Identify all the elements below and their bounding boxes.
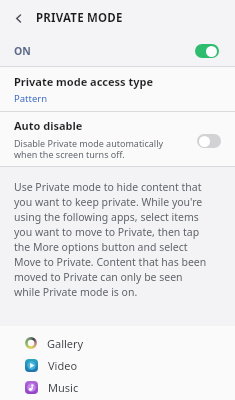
- button[interactable]: Gallery: [0, 332, 235, 354]
- staticText: while Private mode is on.: [14, 285, 138, 299]
- button[interactable]: PRIVATE MODE: [0, 0, 235, 36]
- staticText: the More options button and select: [14, 240, 188, 254]
- button[interactable]: [197, 134, 221, 148]
- staticText: Music: [48, 380, 79, 395]
- staticText: Private mode access type: [14, 74, 154, 89]
- staticText: ON: [14, 44, 31, 58]
- staticText: Auto disable: [14, 118, 83, 133]
- button[interactable]: [195, 44, 219, 58]
- button[interactable]: ON: [0, 36, 235, 66]
- staticText: Video: [48, 358, 78, 373]
- staticText: you want to keep private. While you're: [14, 195, 203, 209]
- button[interactable]: Video: [0, 354, 235, 376]
- staticText: you want to move to Private, then tap: [14, 225, 200, 239]
- button[interactable]: Private mode access type: [0, 67, 235, 111]
- staticText: Move to Private. Content that has been: [14, 255, 207, 269]
- staticText: PRIVATE MODE: [36, 10, 123, 26]
- staticText: Pattern: [14, 92, 48, 105]
- staticText: Disable Private mode automatically when …: [14, 137, 164, 161]
- button[interactable]: Music: [0, 376, 235, 398]
- staticText: Use Private mode to hide content that: [14, 180, 202, 194]
- staticText: Gallery: [47, 336, 84, 351]
- staticText: moved to Private can only be seen: [14, 270, 183, 284]
- staticText: using the following apps, select items: [14, 210, 199, 224]
- button[interactable]: Auto disable: [0, 112, 235, 166]
